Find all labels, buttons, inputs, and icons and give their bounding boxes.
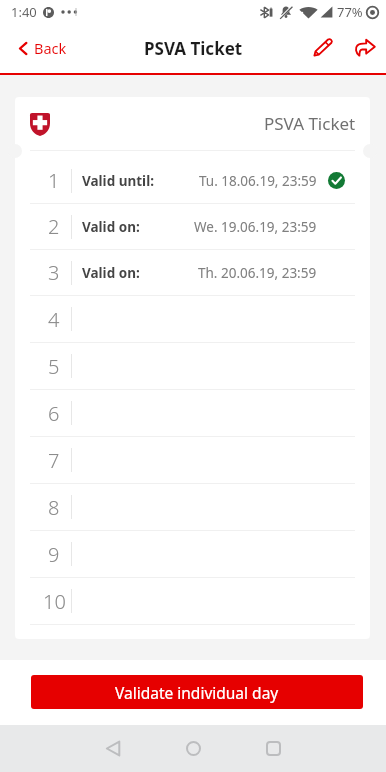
staticText: We. 19.06.19, 23:59 [194,218,317,236]
staticText: Valid until: [82,172,154,190]
staticText: Back [34,38,67,58]
staticText: PSVA Ticket [264,112,356,135]
button[interactable]: 5 [15,343,370,389]
button[interactable]: 2 [15,204,370,249]
button[interactable]: Validate individual day [31,675,363,709]
button[interactable]: Share [344,28,386,73]
staticText: 1:40 [11,3,37,21]
button[interactable]: 9 [15,531,370,577]
button[interactable]: 6 [15,390,370,436]
staticText: Valid on: [82,218,140,236]
staticText: 3 [48,259,60,286]
button[interactable]: 4 [15,296,370,342]
button[interactable]: Home [167,725,219,772]
button[interactable]: 7 [15,437,370,483]
staticText: 77% [337,3,363,21]
button[interactable]: Edit [302,28,344,73]
button[interactable]: Back [87,725,139,772]
button[interactable]: Recent apps [247,725,299,772]
staticText: 8 [48,494,60,521]
staticText: 9 [48,541,60,568]
staticText: 1 [48,167,60,194]
button[interactable]: 1 [15,158,370,203]
staticText: 5 [48,353,60,380]
staticText: 10 [43,588,66,615]
button[interactable]: 10 [15,578,370,624]
staticText: 7 [48,447,60,474]
staticText: Th. 20.06.19, 23:59 [198,264,317,282]
staticText: 2 [48,213,60,240]
staticText: 6 [48,400,60,427]
staticText: Validate individual day [115,682,279,703]
staticText: 4 [48,306,60,333]
staticText: Tu. 18.06.19, 23:59 [199,172,317,190]
button[interactable]: Back [0,33,81,69]
staticText: Valid on: [82,264,140,282]
button[interactable]: 3 [15,250,370,295]
staticText: PSVA Ticket [144,37,243,60]
button[interactable]: 8 [15,484,370,530]
